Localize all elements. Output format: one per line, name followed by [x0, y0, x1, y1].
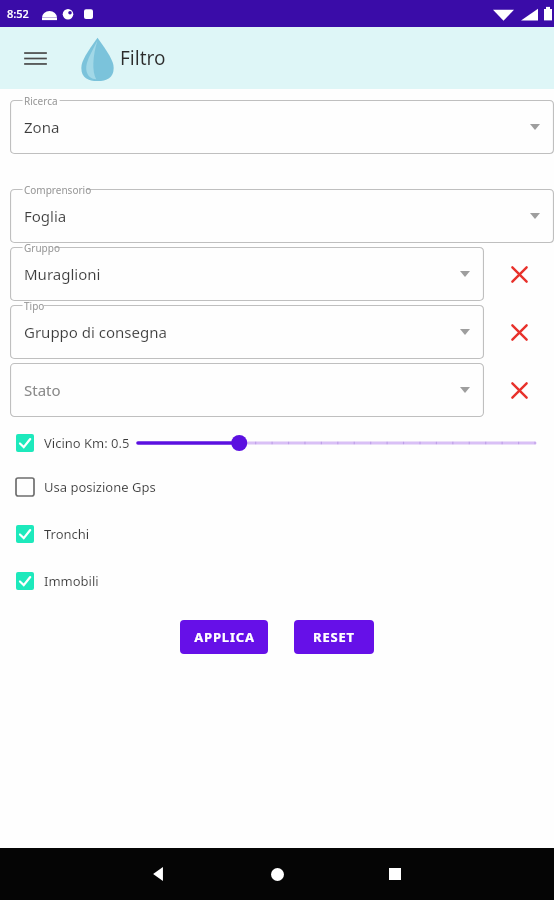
button[interactable]: Recents — [375, 854, 415, 894]
button[interactable]: Home — [257, 854, 297, 894]
staticText: Vicino Km: 0.5 — [44, 434, 130, 452]
staticText: Usa posizione Gps — [44, 478, 156, 496]
staticText: RESET — [313, 628, 355, 646]
staticText: Muraglioni — [24, 264, 101, 284]
button[interactable]: Tipo — [10, 305, 484, 359]
staticText: Immobili — [44, 572, 99, 590]
staticText: Gruppo di consegna — [24, 322, 167, 342]
staticText: Tipo — [24, 299, 45, 313]
button[interactable]: Stato — [10, 363, 484, 417]
button[interactable]: Tronchi — [16, 522, 90, 546]
button[interactable]: Rimuovi filtro — [484, 305, 554, 359]
button[interactable]: Comprensorio — [10, 189, 554, 243]
staticText: Stato — [24, 380, 61, 400]
staticText: Foglia — [24, 206, 67, 226]
staticText: 8:52 — [7, 6, 29, 21]
button[interactable]: Usa posizione Gps — [16, 475, 156, 499]
button[interactable]: Rimuovi filtro — [484, 363, 554, 417]
button[interactable]: Vicino Km: 0.5 — [16, 434, 130, 452]
staticText: APPLICA — [194, 628, 255, 646]
button[interactable]: Immobili — [16, 569, 99, 593]
button[interactable]: Distanza — [138, 430, 535, 456]
button[interactable]: Gruppo — [10, 247, 484, 301]
button[interactable]: Rimuovi filtro — [484, 247, 554, 301]
button[interactable]: Ricerca — [10, 100, 554, 154]
staticText: Tronchi — [44, 525, 90, 543]
button[interactable]: Back — [139, 854, 179, 894]
button[interactable]: APPLICA — [180, 620, 268, 654]
staticText: Ricerca — [24, 94, 58, 108]
staticText: Filtro — [120, 45, 166, 71]
staticText: Comprensorio — [24, 183, 92, 197]
staticText: Zona — [24, 117, 60, 137]
button[interactable]: Menu — [17, 40, 53, 76]
button[interactable]: RESET — [294, 620, 374, 654]
staticText: Gruppo — [24, 241, 60, 255]
